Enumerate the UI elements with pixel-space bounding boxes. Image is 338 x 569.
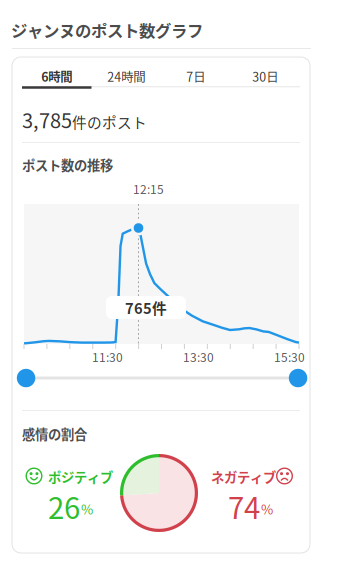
staticText: 件のポスト — [72, 111, 147, 132]
button[interactable]: 7日 — [161, 66, 230, 86]
staticText: 感情の割合 — [22, 424, 87, 443]
staticText: 26 — [48, 485, 80, 527]
staticText: ジャンヌのポスト数グラフ — [11, 18, 203, 42]
staticText: 13:30 — [183, 348, 214, 365]
staticText: 30日 — [252, 67, 278, 85]
staticText: 6時間 — [41, 67, 72, 85]
button[interactable]: 24時間 — [91, 66, 161, 86]
button[interactable]: 30日 — [230, 66, 300, 86]
staticText: ポスト数の推移 — [22, 155, 113, 174]
staticText: 15:30 — [274, 348, 305, 365]
staticText: 7日 — [186, 67, 205, 85]
staticText: % — [261, 499, 273, 518]
button[interactable]: Range end — [289, 369, 307, 387]
staticText: 3,785 — [22, 105, 72, 134]
staticText: ポジティブ — [48, 467, 113, 486]
staticText: ネガティブ — [211, 467, 276, 486]
staticText: % — [81, 499, 93, 518]
staticText: 765件 — [125, 297, 167, 318]
staticText: 24時間 — [107, 67, 145, 85]
staticText: 12:15 — [133, 180, 164, 197]
staticText: 11:30 — [92, 348, 123, 365]
button[interactable]: 6時間 — [22, 66, 91, 86]
button[interactable]: Range start — [17, 369, 35, 387]
staticText: 74 — [228, 485, 260, 527]
